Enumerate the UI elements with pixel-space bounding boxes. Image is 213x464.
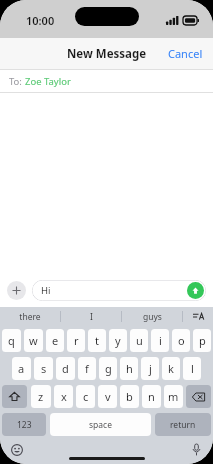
button[interactable]: b	[120, 385, 139, 408]
button[interactable]: v	[98, 385, 117, 408]
button[interactable]: Shift	[2, 385, 27, 408]
staticText: g	[105, 361, 112, 376]
button[interactable]: j	[141, 357, 159, 380]
staticText: j	[149, 361, 152, 376]
button[interactable]: Backspace	[186, 385, 211, 408]
button[interactable]: i	[151, 329, 169, 352]
staticText: Zoe Taylor	[25, 75, 71, 88]
staticText: Hi	[41, 284, 51, 297]
staticText: return	[170, 419, 196, 431]
button[interactable]: 123	[2, 413, 46, 436]
button[interactable]: r	[67, 329, 85, 352]
staticText: p	[199, 333, 206, 348]
staticText: 10:00	[26, 13, 55, 28]
button[interactable]: Send	[187, 282, 204, 299]
button[interactable]: g	[99, 357, 117, 380]
staticText: x	[61, 389, 67, 404]
staticText: y	[115, 333, 121, 348]
staticText: b	[126, 389, 133, 404]
staticText: guys	[143, 311, 162, 323]
button[interactable]: k	[162, 357, 180, 380]
staticText: To:	[9, 75, 25, 88]
staticText: u	[136, 333, 143, 348]
button[interactable]: w	[24, 329, 43, 352]
staticText: i	[159, 333, 162, 348]
button[interactable]: return	[155, 413, 211, 436]
staticText: n	[148, 389, 155, 404]
button[interactable]: z	[31, 385, 51, 408]
button[interactable]: Dictation	[187, 441, 205, 459]
staticText: New Message	[67, 46, 147, 62]
button[interactable]: o	[172, 329, 190, 352]
button[interactable]: there	[0, 307, 60, 326]
staticText: m	[168, 389, 179, 404]
button[interactable]: f	[78, 357, 96, 380]
button[interactable]: guys	[122, 307, 182, 326]
staticText: space	[89, 419, 112, 431]
staticText: k	[168, 361, 174, 376]
staticText: l	[191, 361, 194, 376]
button[interactable]: p	[193, 329, 211, 352]
staticText: z	[38, 389, 44, 404]
button[interactable]: h	[120, 357, 138, 380]
button[interactable]: n	[142, 385, 161, 408]
button[interactable]: Emoji	[8, 441, 26, 459]
staticText: o	[178, 333, 185, 348]
staticText: d	[62, 361, 69, 376]
staticText: there	[19, 311, 41, 323]
button[interactable]: Cancel	[158, 40, 213, 67]
staticText: 123	[17, 419, 32, 431]
button[interactable]: Add attachment	[7, 281, 26, 300]
button[interactable]: u	[130, 329, 148, 352]
staticText: Cancel	[168, 46, 203, 61]
staticText: q	[8, 333, 15, 348]
staticText: c	[83, 389, 89, 404]
staticText: h	[126, 361, 133, 376]
button[interactable]: e	[46, 329, 64, 352]
button[interactable]: y	[109, 329, 127, 352]
button[interactable]: d	[56, 357, 75, 380]
staticText: t	[95, 333, 99, 348]
staticText: r	[74, 333, 79, 348]
button[interactable]: Hi	[32, 280, 206, 301]
button[interactable]: space	[50, 413, 151, 436]
button[interactable]: I	[61, 307, 121, 326]
staticText: v	[105, 389, 111, 404]
button[interactable]: t	[88, 329, 106, 352]
button[interactable]: s	[34, 357, 53, 380]
staticText: f	[85, 361, 89, 376]
button[interactable]: m	[164, 385, 183, 408]
staticText: e	[52, 333, 59, 348]
button[interactable]: Text formatting	[183, 307, 213, 326]
staticText: w	[29, 333, 38, 348]
button[interactable]: a	[12, 357, 31, 380]
button[interactable]: q	[2, 329, 21, 352]
staticText: I	[90, 311, 93, 323]
staticText: s	[41, 361, 47, 376]
button[interactable]: l	[183, 357, 201, 380]
button[interactable]: To:	[0, 70, 213, 92]
staticText: a	[18, 361, 25, 376]
button[interactable]: c	[76, 385, 95, 408]
button[interactable]: x	[54, 385, 73, 408]
